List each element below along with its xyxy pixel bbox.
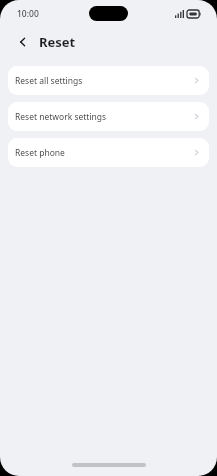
button[interactable]: Back (13, 32, 33, 52)
staticText: Reset (39, 33, 76, 51)
button[interactable]: Reset phone (8, 138, 209, 167)
staticText: 10:00 (17, 8, 39, 20)
staticText: Reset network settings (15, 111, 107, 123)
staticText: Reset phone (15, 147, 65, 159)
staticText: Reset all settings (15, 75, 83, 87)
button[interactable]: Reset network settings (8, 102, 209, 131)
button[interactable]: Reset all settings (8, 66, 209, 95)
